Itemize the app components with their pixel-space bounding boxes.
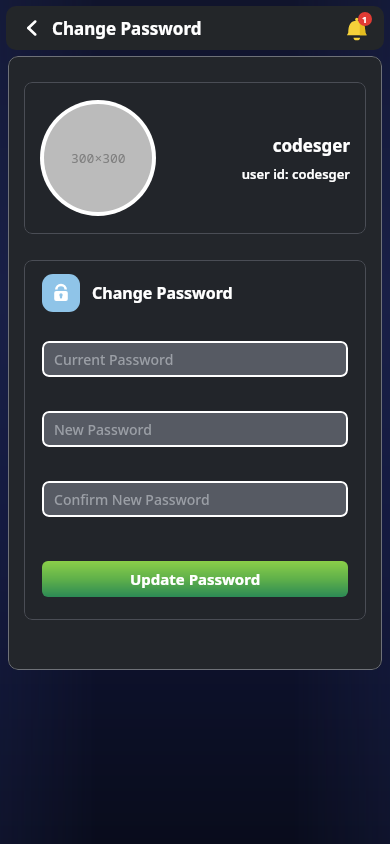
button[interactable]: Notifications: [340, 10, 376, 46]
staticText: New Password: [54, 420, 152, 439]
button[interactable]: Current Password: [42, 341, 348, 377]
staticText: Change Password: [92, 282, 233, 304]
staticText: 300×300: [71, 149, 126, 167]
staticText: Update Password: [130, 569, 261, 589]
button[interactable]: Confirm New Password: [42, 481, 348, 517]
staticText: Confirm New Password: [54, 490, 210, 509]
staticText: Current Password: [54, 350, 174, 369]
button[interactable]: Back: [12, 8, 52, 48]
staticText: 1: [362, 13, 368, 25]
button[interactable]: New Password: [42, 411, 348, 447]
staticText: user id: codesger: [241, 165, 350, 183]
staticText: Change Password: [52, 17, 202, 40]
staticText: codesger: [272, 134, 350, 157]
button[interactable]: Update Password: [42, 561, 348, 597]
